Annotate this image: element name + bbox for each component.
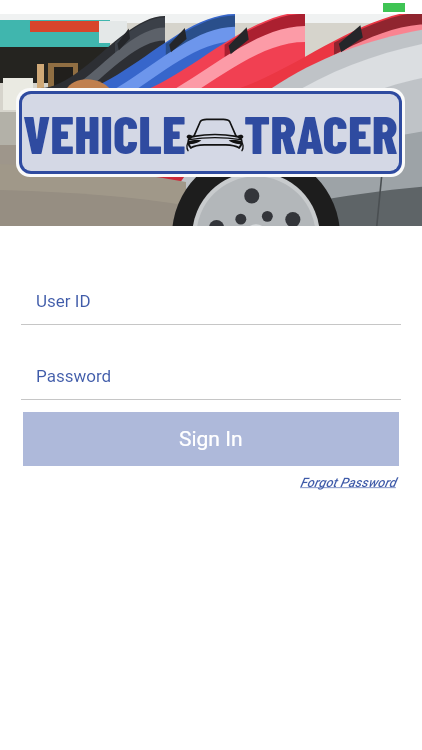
staticText: Sign In — [179, 427, 243, 452]
staticText: VEHICLE — [23, 100, 186, 165]
staticText: User ID — [36, 291, 91, 311]
staticText: Password — [36, 366, 112, 386]
staticText: TRACER — [244, 100, 398, 165]
button[interactable]: Password — [21, 365, 401, 400]
button[interactable]: User ID — [21, 290, 401, 325]
button[interactable]: Sign In — [23, 412, 399, 466]
button[interactable]: Forgot Password — [300, 473, 422, 492]
